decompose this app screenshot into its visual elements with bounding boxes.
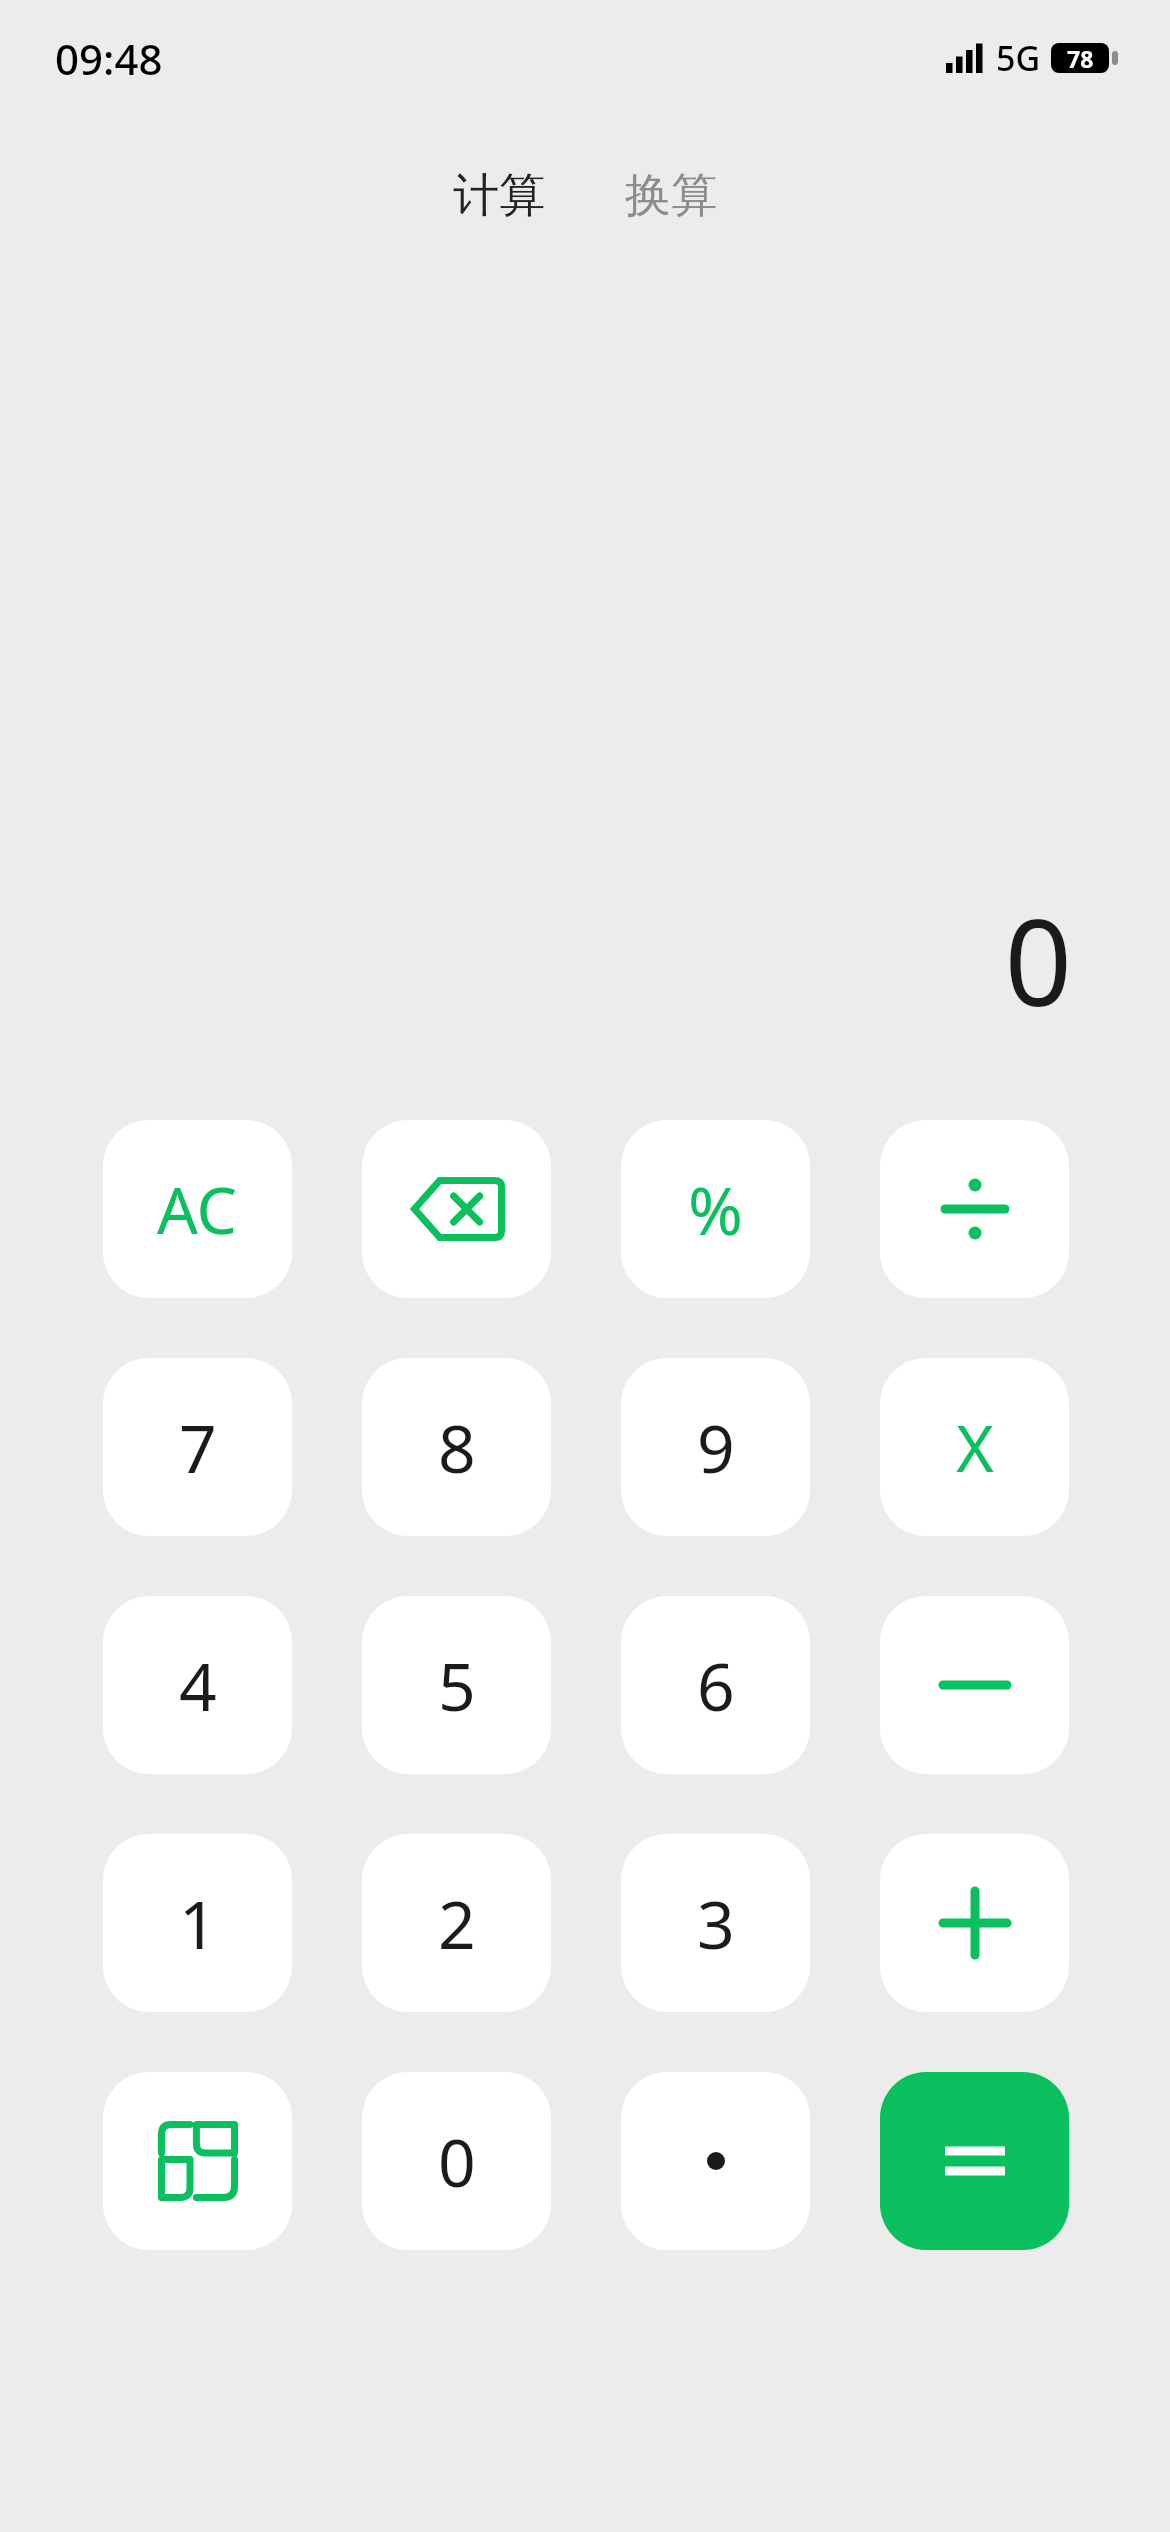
staticText: 78 [1067,43,1094,73]
staticText: 9 [697,1402,735,1492]
button[interactable]: 3 [621,1834,810,2012]
button[interactable]: 9 [621,1358,810,1536]
staticText: 09:48 [55,30,163,87]
button[interactable] [621,2072,810,2250]
button[interactable]: 5 [362,1596,551,1774]
button[interactable]: 计算 [443,163,555,229]
staticText: 1 [179,1878,217,1968]
staticText: 7 [179,1402,217,1492]
staticText: X [956,1404,994,1491]
staticText: AC [157,1166,238,1253]
button[interactable]: Plus [880,1834,1069,2012]
staticText: 0 [438,2116,476,2206]
staticText: 4 [179,1640,217,1730]
staticText: % [688,1164,743,1254]
staticText: 6 [697,1640,735,1730]
button[interactable]: 换算 [615,163,727,229]
staticText: 5G [996,35,1041,81]
staticText: 0 [1004,880,1072,1041]
button[interactable]: Minus [880,1596,1069,1774]
button[interactable]: 6 [621,1596,810,1774]
button[interactable]: 4 [103,1596,292,1774]
button[interactable]: 0 [362,2072,551,2250]
button[interactable]: 8 [362,1358,551,1536]
button[interactable]: 7 [103,1358,292,1536]
button[interactable]: Backspace [362,1120,551,1298]
staticText: 3 [697,1878,735,1968]
button[interactable]: X [880,1358,1069,1536]
button[interactable]: AC [103,1120,292,1298]
button[interactable]: % [621,1120,810,1298]
button[interactable]: 2 [362,1834,551,2012]
staticText: 2 [438,1878,476,1968]
staticText: 计算 [453,167,545,225]
staticText: 5 [438,1640,476,1730]
staticText: 8 [438,1402,476,1492]
button[interactable]: 1 [103,1834,292,2012]
button[interactable]: Equals [880,2072,1069,2250]
staticText: 换算 [625,167,717,225]
button[interactable]: Divide [880,1120,1069,1298]
button[interactable]: Scientific [103,2072,292,2250]
